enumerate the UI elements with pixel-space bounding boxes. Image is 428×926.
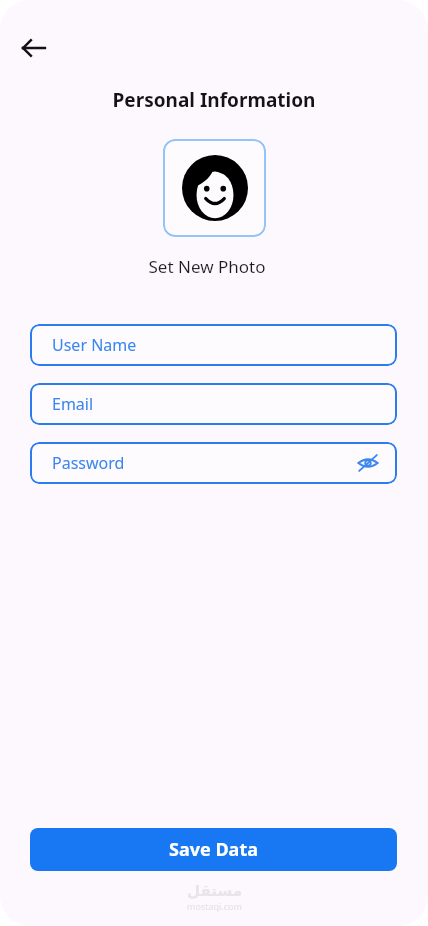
button[interactable]: Toggle password visibility [353,448,383,478]
staticText: Password [52,452,125,474]
button[interactable]: Save Data [30,828,397,871]
button[interactable]: Back [10,24,58,72]
button[interactable]: Email [30,383,397,425]
button[interactable]: Set New Photo [163,139,266,237]
staticText: Personal Information [0,87,428,113]
staticText: mostaqi.com [187,900,242,912]
staticText: Save Data [169,837,258,862]
staticText: مستقل [187,882,242,899]
button[interactable]: User Name [30,324,397,366]
staticText: User Name [52,334,137,356]
staticText: Email [52,393,94,415]
button[interactable]: Password [30,442,397,484]
staticText: Set New Photo [0,255,414,278]
